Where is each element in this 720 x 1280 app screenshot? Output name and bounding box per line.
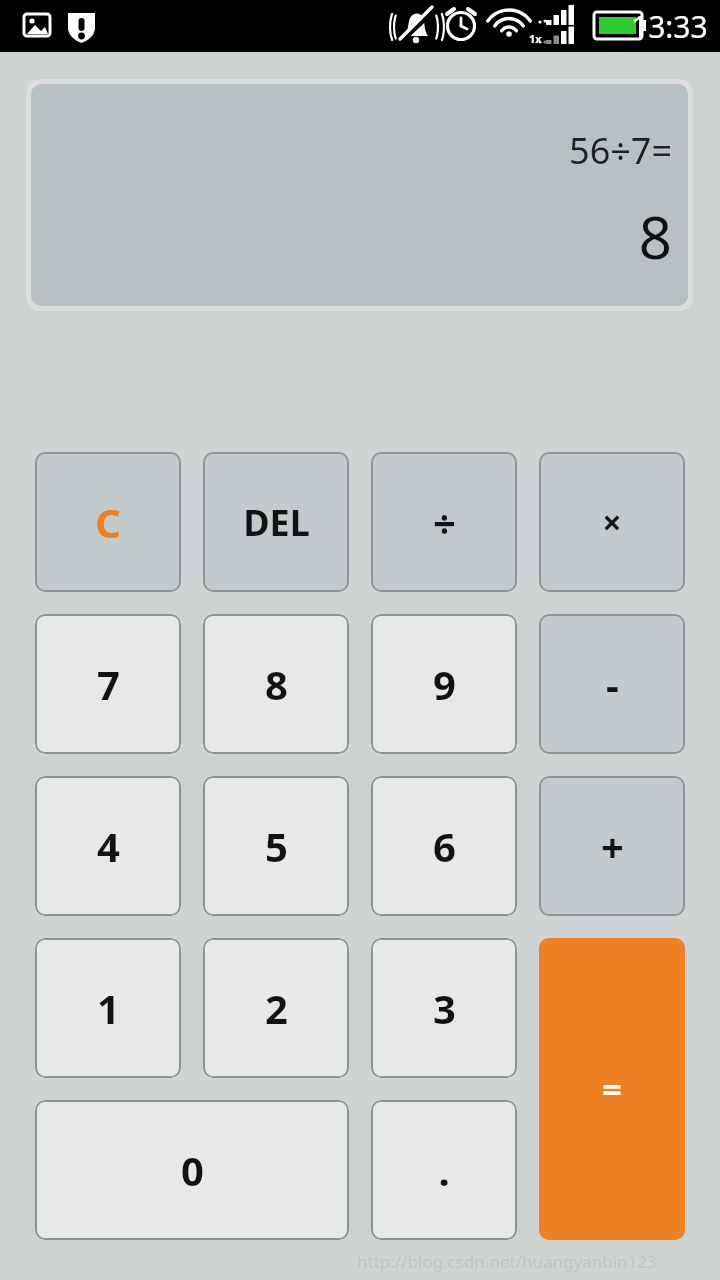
button[interactable]: 0 bbox=[35, 1100, 349, 1240]
staticText: × bbox=[602, 499, 622, 545]
staticText: 9 bbox=[433, 657, 456, 711]
staticText: 2 bbox=[265, 981, 288, 1035]
staticText: 13:33 bbox=[631, 6, 708, 47]
staticText: http://blog.csdn.net/huangyanbin123 bbox=[357, 1250, 657, 1273]
staticText: 6 bbox=[433, 819, 456, 873]
staticText: . bbox=[438, 1143, 450, 1197]
staticText: ÷ bbox=[433, 495, 456, 549]
staticText: 1x bbox=[529, 31, 542, 46]
button[interactable]: 8 bbox=[203, 614, 349, 754]
staticText: 5 bbox=[265, 819, 288, 873]
staticText: 3 bbox=[433, 981, 456, 1035]
button[interactable]: 6 bbox=[371, 776, 517, 916]
button[interactable]: 4 bbox=[35, 776, 181, 916]
button[interactable]: . bbox=[371, 1100, 517, 1240]
button[interactable]: 9 bbox=[371, 614, 517, 754]
button[interactable]: ÷ bbox=[371, 452, 517, 592]
staticText: 7 bbox=[97, 657, 120, 711]
staticText: 56÷7= bbox=[569, 126, 672, 175]
staticText: = bbox=[602, 1066, 622, 1112]
button[interactable]: 2 bbox=[203, 938, 349, 1078]
button[interactable]: 3 bbox=[371, 938, 517, 1078]
button[interactable]: = bbox=[539, 938, 685, 1240]
staticText: C bbox=[95, 495, 121, 549]
button[interactable]: 5 bbox=[203, 776, 349, 916]
staticText: 1 bbox=[97, 981, 120, 1035]
button[interactable]: C bbox=[35, 452, 181, 592]
staticText: DEL bbox=[243, 498, 310, 547]
staticText: + bbox=[601, 819, 624, 873]
button[interactable]: + bbox=[539, 776, 685, 916]
staticText: 0 bbox=[181, 1143, 204, 1197]
staticText: 8 bbox=[638, 197, 672, 276]
button[interactable]: DEL bbox=[203, 452, 349, 592]
staticText: 8 bbox=[265, 657, 288, 711]
button[interactable]: 1 bbox=[35, 938, 181, 1078]
button[interactable]: × bbox=[539, 452, 685, 592]
staticText: 4 bbox=[97, 819, 120, 873]
staticText: - bbox=[606, 657, 619, 711]
button[interactable]: 7 bbox=[35, 614, 181, 754]
button[interactable]: - bbox=[539, 614, 685, 754]
